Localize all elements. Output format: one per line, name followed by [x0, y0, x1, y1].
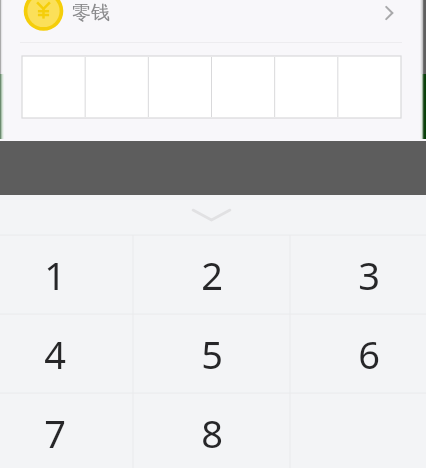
- staticText: 5: [201, 328, 223, 380]
- button[interactable]: 8: [133, 393, 290, 468]
- staticText: 4: [44, 328, 66, 380]
- button[interactable]: [22, 56, 401, 118]
- button[interactable]: 5: [133, 314, 290, 393]
- button[interactable]: 7: [0, 393, 133, 468]
- other: Change payment method: [382, 6, 396, 20]
- button[interactable]: 1: [0, 235, 133, 314]
- staticText: 2: [201, 249, 223, 301]
- staticText: 1: [44, 249, 66, 301]
- button[interactable]: 6: [290, 314, 426, 393]
- staticText: 零钱: [72, 1, 110, 25]
- staticText: 3: [358, 249, 380, 301]
- other: Hide keyboard: [192, 209, 231, 221]
- staticText: 8: [201, 407, 223, 459]
- button[interactable]: 2: [133, 235, 290, 314]
- button[interactable]: 4: [0, 314, 133, 393]
- staticText: 6: [358, 328, 380, 380]
- button[interactable]: 3: [290, 235, 426, 314]
- staticText: 7: [44, 407, 66, 459]
- button[interactable]: 零钱: [0, 0, 426, 43]
